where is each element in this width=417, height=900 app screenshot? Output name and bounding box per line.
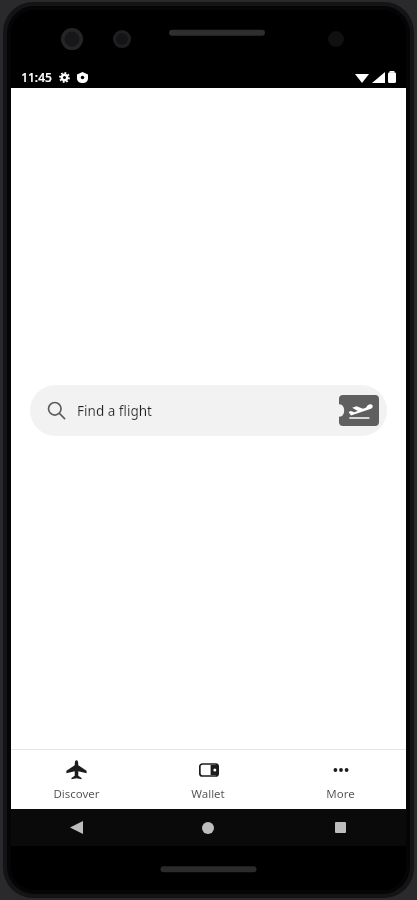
staticText: 11:45 <box>21 69 52 85</box>
button[interactable]: Back <box>11 809 142 846</box>
button[interactable]: Wallet <box>142 750 274 809</box>
button[interactable]: Recent apps <box>274 809 406 846</box>
button[interactable]: Discover <box>11 750 142 809</box>
button[interactable]: Find a flight <box>30 385 387 436</box>
staticText: More <box>326 786 355 802</box>
button[interactable]: Home <box>142 809 274 846</box>
button[interactable]: Boarding pass <box>339 395 379 426</box>
staticText: Wallet <box>191 786 225 802</box>
staticText: Find a flight <box>77 402 152 420</box>
staticText: Discover <box>53 786 100 802</box>
button[interactable]: More <box>274 750 406 809</box>
